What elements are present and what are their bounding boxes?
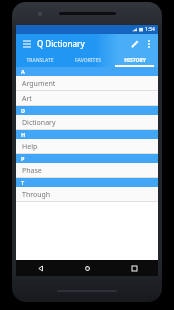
staticText: A xyxy=(21,68,25,75)
button[interactable]: Open navigation drawer xyxy=(20,37,33,50)
staticText: Q Dictionary xyxy=(37,38,85,49)
button[interactable]: Art xyxy=(16,91,158,106)
button[interactable]: FAVORITES xyxy=(64,53,111,67)
staticText: Dictionary xyxy=(22,118,56,128)
button[interactable]: Recent apps xyxy=(111,260,158,276)
staticText: T xyxy=(21,179,25,186)
staticText: 1:54 xyxy=(145,26,155,33)
button[interactable]: P xyxy=(16,154,158,163)
staticText: D xyxy=(21,107,26,114)
button[interactable]: H xyxy=(16,130,158,139)
staticText: H xyxy=(21,131,26,138)
staticText: TRANSLATE xyxy=(26,57,54,64)
button[interactable]: Phase xyxy=(16,163,158,178)
button[interactable]: Help xyxy=(16,139,158,154)
staticText: Art xyxy=(22,94,32,104)
button[interactable]: More options xyxy=(142,37,156,51)
button[interactable]: Dictionary xyxy=(16,115,158,130)
staticText: HISTORY xyxy=(124,57,146,64)
staticText: Phase xyxy=(22,166,42,176)
button[interactable]: Argument xyxy=(16,76,158,91)
button[interactable]: Edit xyxy=(127,36,142,51)
staticText: P xyxy=(21,155,25,162)
button[interactable]: A xyxy=(16,67,158,76)
button[interactable]: T xyxy=(16,178,158,187)
button[interactable]: TRANSLATE xyxy=(16,53,64,67)
button[interactable]: Through xyxy=(16,187,158,202)
button[interactable]: Home xyxy=(64,260,111,276)
button[interactable]: Back xyxy=(16,260,64,276)
staticText: Help xyxy=(22,142,38,152)
staticText: FAVORITES xyxy=(75,57,101,64)
staticText: Argument xyxy=(22,79,56,89)
button[interactable]: HISTORY xyxy=(111,53,158,67)
button[interactable]: D xyxy=(16,106,158,115)
staticText: Through xyxy=(22,190,51,200)
